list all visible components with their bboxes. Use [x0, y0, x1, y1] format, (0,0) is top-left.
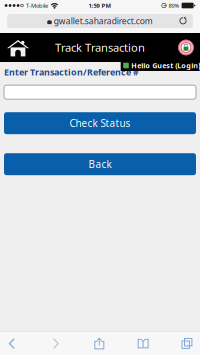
button[interactable]: Share [90, 332, 108, 355]
staticText: 1:59 PM [88, 1, 111, 9]
staticText: Enter Transaction/Reference # [4, 66, 139, 78]
button[interactable]: Check Status [4, 112, 196, 134]
staticText: Hello Guest (Login) [131, 61, 200, 70]
staticText: 89% [168, 2, 179, 9]
button[interactable]: Forward [47, 332, 65, 355]
button[interactable]: Back [3, 332, 21, 355]
button[interactable]: Back [4, 153, 196, 175]
staticText: Check Status [69, 116, 130, 130]
staticText: Track Transaction [55, 40, 145, 55]
button[interactable]: Hello Guest (Login) [121, 60, 200, 71]
button[interactable]: Sahara Direct [175, 33, 197, 62]
staticText: T-Mobile [26, 2, 48, 9]
staticText: Back [88, 157, 111, 171]
button[interactable]: Reload [177, 14, 190, 27]
button[interactable]: Bookmarks [134, 332, 152, 355]
button[interactable]: Home [3, 33, 33, 62]
staticText: gwallet.saharadirect.com [54, 15, 153, 27]
button[interactable]: Tabs [178, 332, 196, 355]
